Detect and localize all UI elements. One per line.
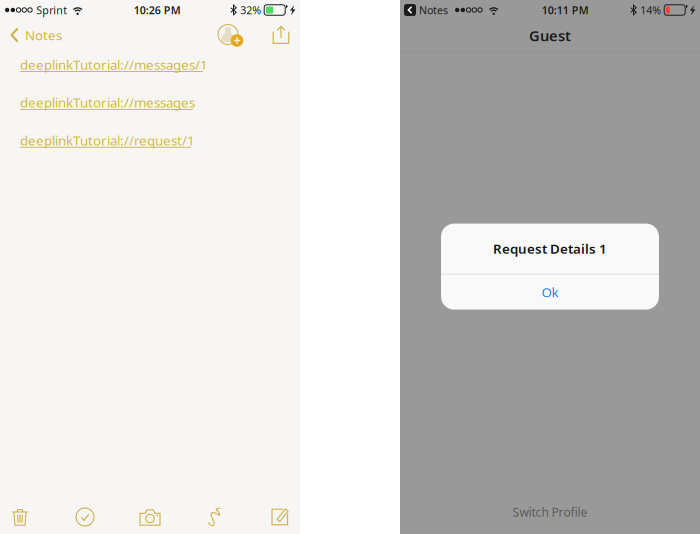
button[interactable]: deeplinkTutorial://request/1 bbox=[0, 134, 300, 154]
button[interactable]: Share bbox=[272, 25, 290, 45]
button[interactable]: Markup bbox=[195, 502, 235, 532]
button[interactable]: Add People bbox=[217, 24, 244, 46]
staticText: Request Details 1 bbox=[493, 240, 607, 257]
staticText: Guest bbox=[529, 26, 571, 45]
button[interactable]: Switch Profile bbox=[512, 497, 587, 527]
button[interactable]: Compose bbox=[260, 502, 300, 532]
staticText: 10:26 PM bbox=[134, 3, 181, 17]
staticText: Notes bbox=[25, 26, 62, 44]
staticText: Sprint bbox=[36, 3, 67, 17]
staticText: deeplinkTutorial://messages bbox=[20, 93, 195, 111]
button[interactable]: Notes bbox=[0, 23, 62, 47]
button[interactable]: Delete bbox=[0, 502, 40, 532]
button[interactable]: deeplinkTutorial://messages/1 bbox=[0, 58, 300, 78]
button[interactable]: deeplinkTutorial://messages bbox=[0, 96, 300, 116]
staticText: Switch Profile bbox=[512, 504, 587, 520]
staticText: Ok bbox=[541, 283, 558, 301]
button[interactable]: Ok bbox=[441, 274, 659, 309]
staticText: 32% bbox=[240, 3, 261, 17]
button[interactable]: Checklist bbox=[65, 502, 105, 532]
button[interactable]: Camera bbox=[130, 502, 170, 532]
staticText: deeplinkTutorial://messages/1 bbox=[20, 56, 208, 73]
staticText: Notes bbox=[419, 3, 448, 17]
staticText: 10:11 PM bbox=[542, 3, 589, 17]
staticText: deeplinkTutorial://request/1 bbox=[20, 131, 195, 149]
staticText: 14% bbox=[640, 3, 661, 17]
